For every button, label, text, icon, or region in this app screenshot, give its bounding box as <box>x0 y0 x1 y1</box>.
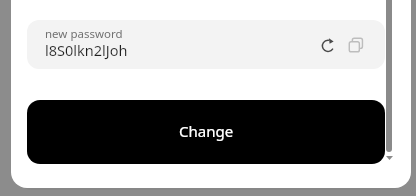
button[interactable]: Copy password <box>342 31 370 59</box>
staticText: new password <box>45 26 123 42</box>
button[interactable]: Regenerate password <box>314 31 342 59</box>
staticText: l8S0lkn2lJoh <box>45 40 128 60</box>
staticText: Change <box>179 121 234 141</box>
button[interactable]: new password <box>27 20 385 69</box>
button[interactable]: Change <box>27 100 385 164</box>
